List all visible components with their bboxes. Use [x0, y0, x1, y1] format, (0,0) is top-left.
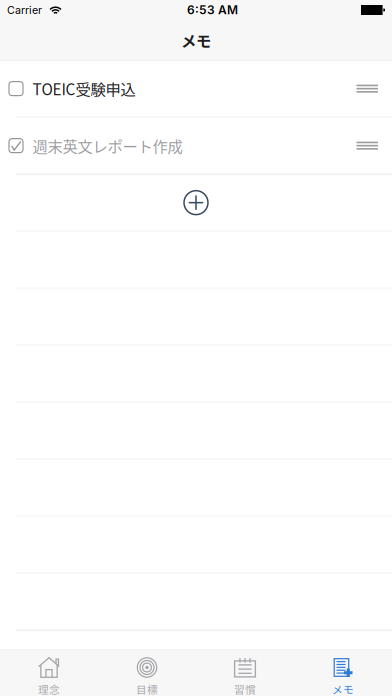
- button[interactable]: 目標: [98, 649, 196, 696]
- button[interactable]: 習慣: [196, 649, 294, 696]
- staticText: Carrier: [7, 3, 42, 16]
- button[interactable]: メモ: [294, 649, 392, 696]
- staticText: TOEIC受験申込: [32, 77, 135, 100]
- button[interactable]: 週末英文レポート作成: [0, 117, 392, 174]
- staticText: 6:53 AM: [187, 3, 238, 17]
- staticText: 理念: [38, 681, 60, 696]
- staticText: 習慣: [234, 681, 256, 696]
- button[interactable]: TOEIC受験申込: [0, 60, 392, 117]
- staticText: 目標: [136, 681, 158, 696]
- button[interactable]: 理念: [0, 649, 98, 696]
- staticText: メモ: [332, 681, 354, 696]
- staticText: メモ: [181, 29, 211, 51]
- button[interactable]: Add memo: [0, 174, 392, 231]
- staticText: 週末英文レポート作成: [32, 134, 182, 157]
